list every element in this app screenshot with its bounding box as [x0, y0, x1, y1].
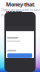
staticText: Money that moves [6, 1, 34, 15]
staticText: Smarter banking [5, 1, 34, 7]
button[interactable] [7, 53, 32, 58]
staticText: Open an account in two minutes [0, 7, 39, 17]
